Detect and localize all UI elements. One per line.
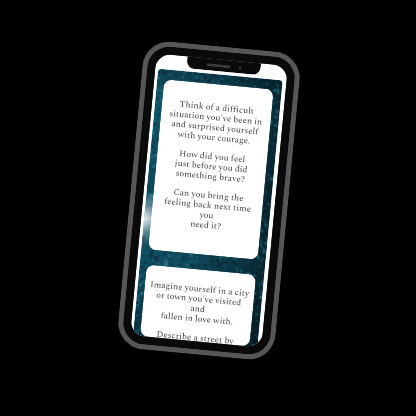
staticText: How did you feel just before you did som…	[173, 147, 250, 186]
staticText: Describe a street by street walk, showin…	[145, 327, 245, 346]
staticText: 1	[201, 252, 205, 255]
button[interactable]: Imagine yourself in a city or town you'v…	[140, 264, 256, 346]
button[interactable]: Think of a difficult situation you've be…	[148, 79, 274, 260]
staticText: Imagine yourself in a city or town you'v…	[146, 278, 250, 330]
staticText: Can you bring the feeling back next time…	[155, 184, 259, 236]
staticText: Think of a difficult situation you've be…	[166, 97, 264, 149]
